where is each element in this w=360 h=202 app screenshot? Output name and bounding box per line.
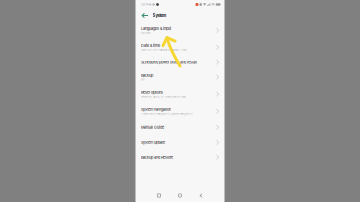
button[interactable]: Home (169, 189, 190, 202)
staticText: Backup and Restore (141, 155, 173, 160)
staticText: Date & time (141, 43, 160, 48)
staticText: Gboard (141, 31, 151, 34)
staticText: Network, apps, or device can be reset (141, 95, 186, 98)
button[interactable]: Recent apps (148, 189, 169, 202)
button[interactable]: Backup (135, 68, 224, 86)
button[interactable]: Back (190, 189, 211, 202)
button[interactable]: Reset options (135, 86, 224, 102)
button[interactable]: Manual Guide (135, 120, 224, 135)
button[interactable]: System update (135, 135, 224, 150)
staticText: GMT+05:30 Pakistan Standard Time (141, 48, 186, 51)
staticText: 7:07 PM (141, 3, 151, 6)
staticText: Scheduled power on/off and restart (141, 60, 197, 64)
button[interactable]: System navigation (135, 102, 224, 120)
staticText: Reset options (141, 90, 163, 95)
staticText: Manual Guide (141, 125, 164, 130)
staticText: Languages & input (141, 26, 171, 31)
button[interactable]: Backup and Restore (135, 150, 224, 165)
staticText: System update (141, 140, 165, 145)
button[interactable]: Back (139, 10, 150, 21)
staticText: Three button navigation, gesture navigat… (141, 112, 192, 115)
staticText: 29% (211, 3, 215, 6)
button[interactable]: Languages & input (135, 22, 224, 39)
staticText: On (141, 78, 144, 81)
staticText: System navigation (141, 107, 171, 112)
button[interactable]: Scheduled power on/off and restart (135, 56, 224, 68)
button[interactable]: Date & time (135, 39, 224, 56)
staticText: System (152, 13, 166, 18)
staticText: Backup (141, 73, 153, 78)
